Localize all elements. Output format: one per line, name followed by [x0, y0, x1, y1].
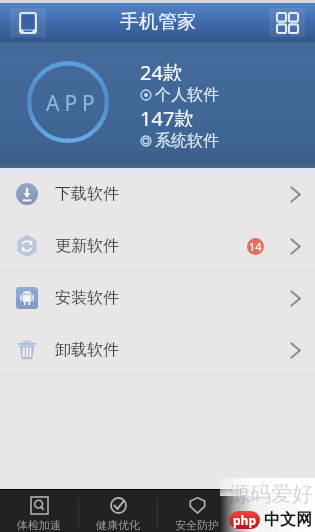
button[interactable]: 安装软件: [0, 272, 315, 324]
staticText: 安装软件: [55, 288, 119, 308]
staticText: 系统软件: [155, 131, 219, 151]
staticText: 中文网: [264, 510, 312, 530]
staticText: 体检加速: [17, 518, 61, 532]
button[interactable]: 体检加速: [0, 497, 78, 532]
staticText: 软件管理: [254, 518, 298, 532]
staticText: 下载软件: [55, 184, 119, 204]
staticText: 安全防护: [175, 518, 219, 532]
staticText: 个人软件: [155, 85, 219, 105]
staticText: 147款: [140, 105, 195, 127]
button[interactable]: 安全防护: [158, 497, 236, 532]
button[interactable]: 更新软件: [0, 220, 315, 272]
button[interactable]: 下载软件: [0, 168, 315, 220]
button[interactable]: 软件管理: [237, 497, 315, 532]
button[interactable]: 卸载软件: [0, 324, 315, 376]
staticText: 更新软件: [55, 236, 119, 256]
staticText: php: [233, 512, 256, 528]
staticText: 手机管家: [120, 10, 196, 34]
button[interactable]: 健康优化: [79, 497, 157, 532]
button[interactable]: All apps: [269, 8, 305, 37]
staticText: APP: [46, 89, 100, 118]
staticText: 14: [249, 239, 262, 254]
staticText: 源码爱好: [229, 481, 313, 507]
staticText: 健康优化: [96, 518, 140, 532]
staticText: 卸载软件: [55, 340, 119, 360]
staticText: 24款: [140, 59, 183, 81]
button[interactable]: Device: [10, 8, 46, 37]
